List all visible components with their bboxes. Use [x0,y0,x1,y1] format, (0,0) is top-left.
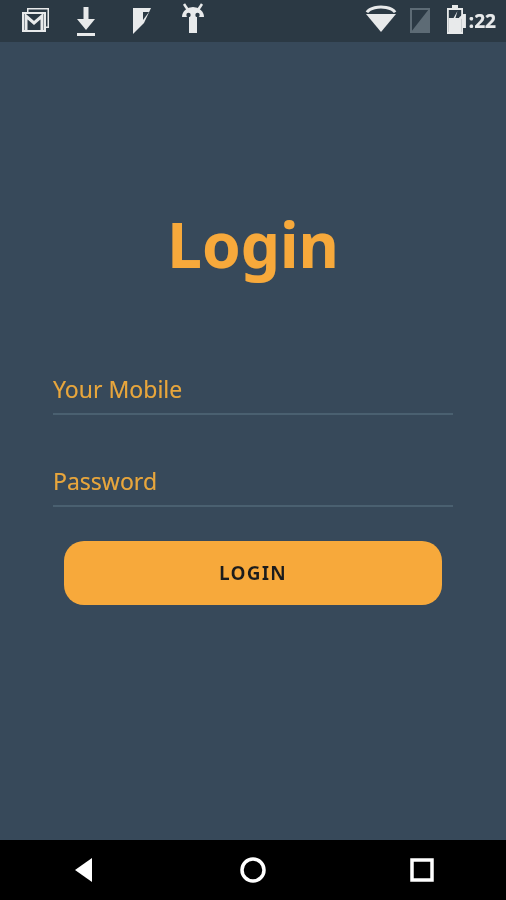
button[interactable]: Back [0,840,168,900]
staticText: Password [53,465,158,496]
staticText: Login [0,202,506,286]
button[interactable]: Home [168,840,337,900]
staticText: LOGIN [219,560,287,586]
staticText: Your Mobile [53,373,183,404]
button[interactable]: LOGIN [64,541,442,605]
button[interactable]: Your Mobile [53,373,453,415]
button[interactable]: Recent apps [337,840,506,900]
button[interactable]: Password [53,465,453,507]
staticText: 1:22 [458,8,496,34]
